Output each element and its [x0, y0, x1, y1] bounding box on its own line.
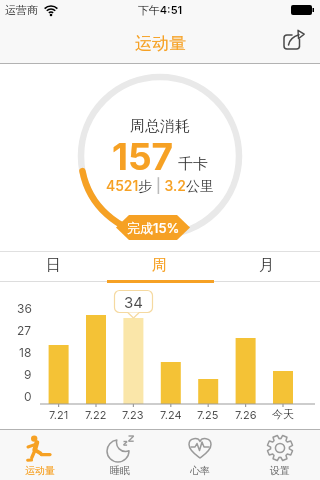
button[interactable]: 运动量 [0, 430, 80, 480]
staticText: 9 [24, 367, 32, 381]
staticText: 周 [152, 256, 167, 275]
staticText: 运动量 [135, 33, 186, 54]
staticText: 周总消耗 [0, 117, 320, 136]
staticText: 心率 [190, 464, 210, 477]
staticText: 完成15% [127, 220, 180, 236]
staticText: 27 [17, 323, 32, 337]
staticText: 34 [124, 293, 143, 311]
staticText: 日 [46, 256, 61, 275]
button[interactable]: 运动量 [0, 33, 320, 54]
staticText: 设置 [270, 464, 290, 477]
staticText: 7.25 [197, 408, 219, 421]
staticText: 157 [112, 134, 174, 179]
staticText: 7.24 [160, 408, 182, 421]
staticText: 36 [17, 301, 32, 315]
staticText: 18 [19, 345, 32, 359]
button[interactable]: 周 [106, 250, 213, 280]
staticText: 7.26 [235, 408, 257, 421]
button[interactable] [278, 28, 310, 58]
staticText: 千卡 [178, 155, 208, 174]
staticText: 7.22 [85, 408, 107, 421]
staticText: 运动量 [25, 464, 55, 477]
staticText: 睡眠 [110, 464, 130, 477]
button[interactable]: 设置 [240, 430, 320, 480]
staticText: 7.21 [49, 408, 69, 421]
staticText: 月 [259, 256, 274, 275]
button[interactable]: 月 [213, 250, 320, 280]
staticText: 4521步 | 3.2公里 [106, 177, 214, 195]
staticText: 下午4:51 [0, 3, 320, 17]
button[interactable]: 心率 [160, 430, 240, 480]
staticText: 0 [24, 389, 32, 403]
button[interactable]: 睡眠 [80, 430, 160, 480]
staticText: 7.23 [122, 408, 144, 421]
staticText: 运营商 [5, 3, 38, 17]
button[interactable]: 日 [0, 250, 106, 280]
staticText: 今天 [272, 407, 294, 421]
